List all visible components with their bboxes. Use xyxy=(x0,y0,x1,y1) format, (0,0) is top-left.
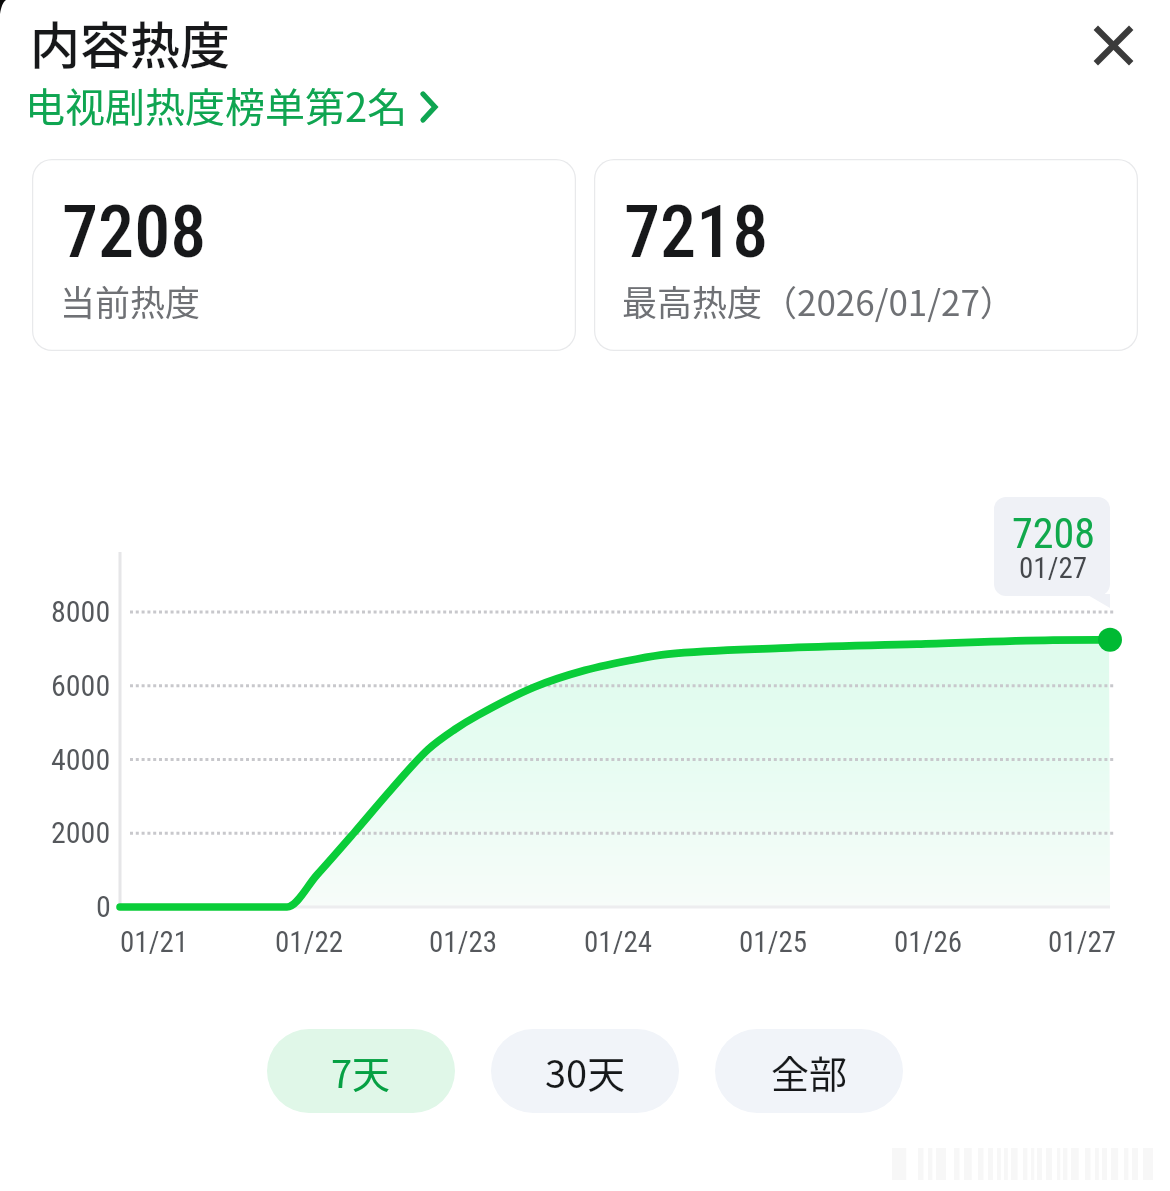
staticText: 30天 xyxy=(545,1044,626,1099)
staticText: 01/23 xyxy=(429,925,498,959)
staticText: 电视剧热度榜单第2名 xyxy=(25,76,408,134)
staticText: 2000 xyxy=(51,815,111,850)
staticText: 最高热度（2026/01/27） xyxy=(622,275,1015,326)
staticText: 01/27 xyxy=(1048,925,1117,959)
staticText: 当前热度 xyxy=(60,275,201,326)
staticText: 内容热度 xyxy=(30,6,230,78)
staticText: 01/26 xyxy=(894,925,963,959)
button[interactable]: 7218 xyxy=(594,159,1138,351)
staticText: 01/25 xyxy=(739,925,808,959)
staticText: 8000 xyxy=(51,594,111,629)
staticText: 0 xyxy=(96,889,111,924)
button[interactable]: 电视剧热度榜单第2名 xyxy=(25,76,444,134)
staticText: 全部 xyxy=(771,1044,848,1099)
staticText: 01/24 xyxy=(584,925,653,959)
staticText: 7208 xyxy=(1012,509,1095,558)
button[interactable]: 7天 xyxy=(267,1029,455,1113)
staticText: 7208 xyxy=(62,190,207,274)
staticText: 7218 xyxy=(624,190,769,274)
staticText: 6000 xyxy=(51,668,111,703)
staticText: 01/22 xyxy=(275,925,344,959)
button[interactable]: 7208 xyxy=(32,159,576,351)
staticText: 01/27 xyxy=(1019,551,1088,585)
staticText: 7天 xyxy=(331,1044,391,1099)
staticText: 4000 xyxy=(51,742,111,777)
button[interactable]: 30天 xyxy=(491,1029,679,1113)
button[interactable]: 全部 xyxy=(715,1029,903,1113)
button[interactable]: Close xyxy=(1079,11,1147,79)
staticText: 01/21 xyxy=(120,925,189,959)
